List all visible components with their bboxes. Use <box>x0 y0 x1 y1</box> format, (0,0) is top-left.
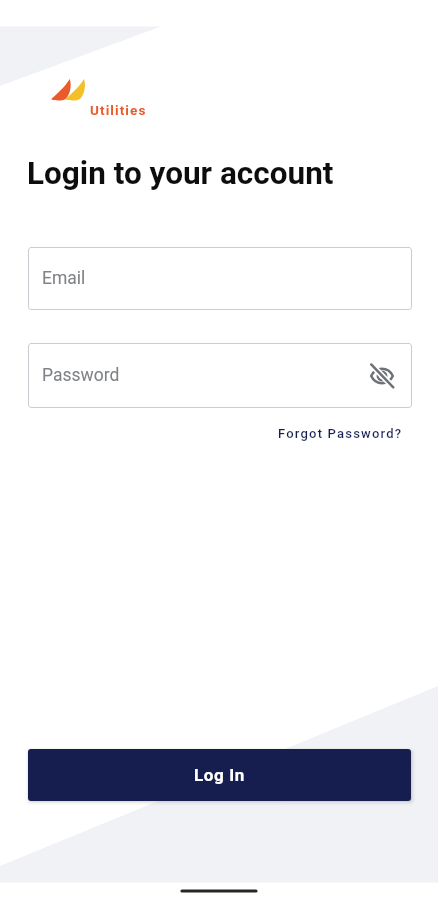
button[interactable]: Password <box>28 343 412 408</box>
button[interactable]: Forgot Password? <box>278 426 403 441</box>
button[interactable]: Email <box>28 247 412 310</box>
staticText: Log In <box>194 765 245 785</box>
staticText: Login to your account <box>27 155 334 192</box>
button[interactable]: Show password <box>361 355 403 397</box>
staticText: Email <box>42 268 86 289</box>
staticText: Forgot Password? <box>278 426 403 441</box>
button[interactable]: Log In <box>28 749 411 801</box>
staticText: Password <box>42 365 120 386</box>
staticText: Utilities <box>90 102 147 118</box>
